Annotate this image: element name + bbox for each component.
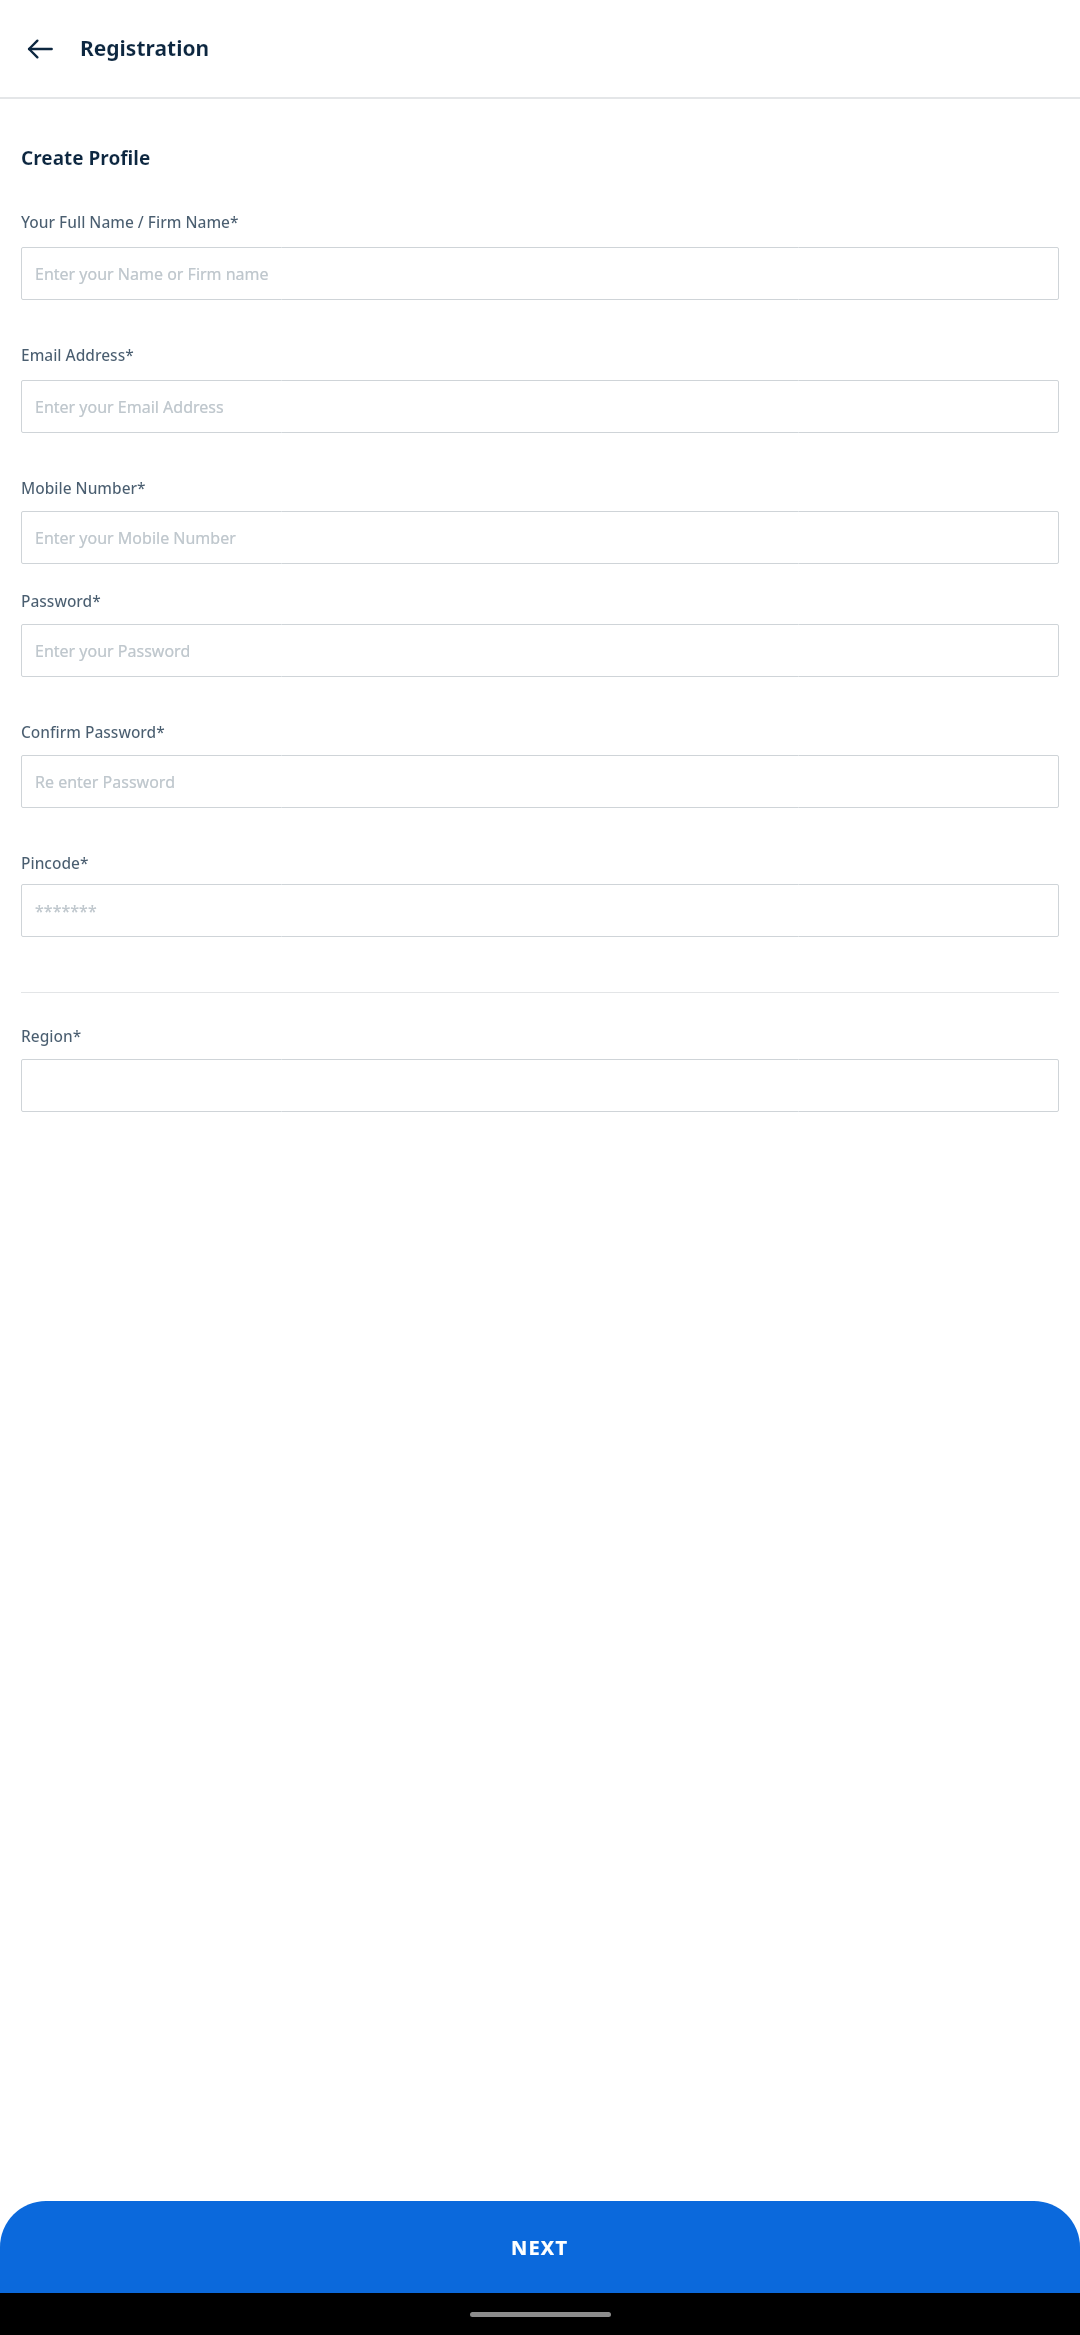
staticText: Pincode* bbox=[21, 852, 89, 873]
staticText: Enter your Email Address bbox=[35, 396, 224, 418]
button[interactable]: NEXT bbox=[0, 2201, 1080, 2293]
staticText: Enter your Name or Firm name bbox=[35, 263, 269, 285]
staticText: Confirm Password* bbox=[21, 721, 165, 742]
staticText: Password* bbox=[21, 590, 101, 611]
staticText: Re enter Password bbox=[35, 771, 175, 793]
staticText: Create Profile bbox=[21, 145, 151, 171]
staticText: Your Full Name / Firm Name* bbox=[21, 211, 239, 232]
staticText: NEXT bbox=[511, 2234, 569, 2261]
button[interactable]: Enter your Password bbox=[21, 624, 1059, 677]
button[interactable] bbox=[21, 1059, 1059, 1112]
staticText: Email Address* bbox=[21, 344, 134, 365]
button[interactable]: Re enter Password bbox=[21, 755, 1059, 808]
staticText: Enter your Mobile Number bbox=[35, 527, 236, 549]
staticText: Registration bbox=[80, 34, 210, 63]
staticText: Enter your Password bbox=[35, 640, 191, 662]
button[interactable]: Enter your Name or Firm name bbox=[21, 247, 1059, 300]
button[interactable]: Enter your Email Address bbox=[21, 380, 1059, 433]
staticText: Mobile Number* bbox=[21, 477, 146, 498]
button[interactable]: Enter your Mobile Number bbox=[21, 511, 1059, 564]
staticText: Region* bbox=[21, 1025, 82, 1046]
button[interactable]: ******* bbox=[21, 884, 1059, 937]
staticText: ******* bbox=[35, 900, 97, 922]
button[interactable]: Back bbox=[16, 25, 64, 73]
